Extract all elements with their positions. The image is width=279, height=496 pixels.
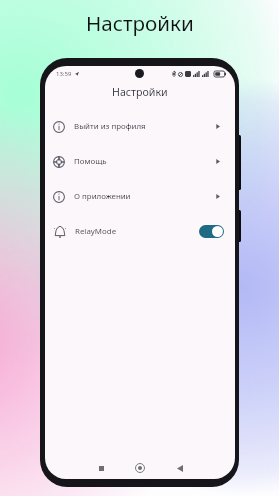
button[interactable]: Выйти из профиля (45, 109, 235, 144)
button[interactable]: Back (172, 460, 188, 476)
button[interactable]: Помощь (45, 144, 235, 179)
staticText: Настройки (86, 9, 194, 37)
button[interactable]: RelayMode (45, 214, 235, 249)
staticText: Помощь (74, 156, 107, 167)
staticText: Выйти из профиля (74, 121, 146, 132)
staticText: RelayMode (75, 226, 117, 237)
button[interactable]: О приложении (45, 179, 235, 214)
staticText: О приложении (74, 191, 131, 202)
button[interactable]: RelayMode switch (199, 225, 224, 238)
button[interactable]: Home (132, 460, 148, 476)
staticText: 13:59 (56, 70, 72, 78)
button[interactable]: Recent apps (93, 460, 109, 476)
staticText: Настройки (112, 85, 168, 100)
